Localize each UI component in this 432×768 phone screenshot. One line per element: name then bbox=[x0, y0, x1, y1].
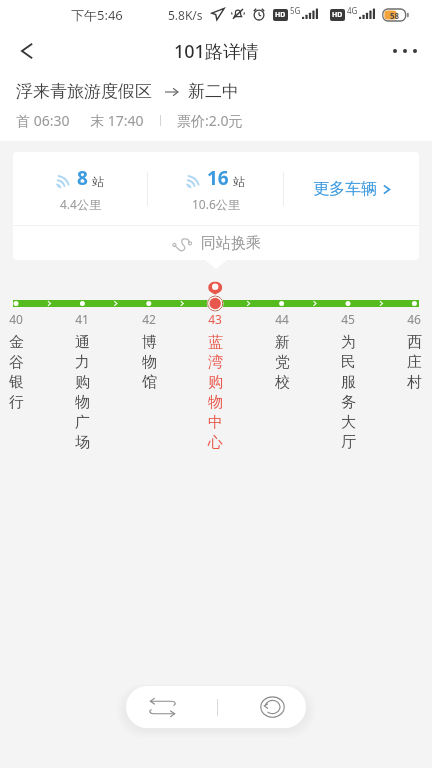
staticText: 4.4公里 bbox=[60, 196, 101, 212]
button[interactable]: 42 bbox=[127, 311, 171, 392]
staticText: 物 bbox=[208, 393, 223, 412]
staticText: 浮来青旅游度假区 bbox=[16, 81, 152, 102]
staticText: 广 bbox=[75, 413, 90, 432]
button[interactable]: 40 bbox=[0, 311, 38, 412]
staticText: 服 bbox=[341, 373, 356, 392]
staticText: 首 06:30 bbox=[16, 111, 70, 129]
button[interactable]: 46 bbox=[392, 311, 432, 392]
staticText: 厅 bbox=[341, 433, 356, 452]
staticText: 46 bbox=[407, 311, 421, 324]
button[interactable]: 更多车辆 bbox=[284, 152, 419, 225]
button[interactable]: 45 bbox=[326, 311, 370, 452]
staticText: 4G bbox=[347, 5, 358, 16]
staticText: 40 bbox=[9, 311, 23, 324]
staticText: 物 bbox=[75, 393, 90, 412]
staticText: 站 bbox=[233, 174, 245, 189]
button[interactable]: 16 bbox=[148, 152, 283, 225]
button[interactable]: 43 bbox=[193, 311, 237, 452]
button[interactable]: 同站换乘 bbox=[13, 226, 419, 260]
button[interactable]: Refresh bbox=[244, 686, 300, 728]
staticText: 购 bbox=[208, 373, 223, 392]
staticText: 41 bbox=[75, 311, 89, 324]
staticText: 行 bbox=[9, 393, 24, 412]
staticText: 101路详情 bbox=[174, 39, 259, 64]
staticText: 大 bbox=[341, 413, 356, 432]
staticText: 心 bbox=[208, 433, 223, 452]
staticText: 更多车辆 bbox=[313, 179, 377, 199]
staticText: 下午5:46 bbox=[71, 6, 123, 24]
staticText: 力 bbox=[75, 353, 90, 372]
staticText: 馆 bbox=[142, 373, 157, 392]
staticText: 银 bbox=[9, 373, 24, 392]
staticText: 新二中 bbox=[188, 81, 239, 102]
staticText: 民 bbox=[341, 353, 356, 372]
staticText: 博 bbox=[142, 333, 157, 352]
staticText: 中 bbox=[208, 413, 223, 432]
staticText: 西 bbox=[407, 333, 422, 352]
staticText: 票价:2.0元 bbox=[177, 111, 243, 129]
staticText: 站 bbox=[92, 174, 104, 189]
staticText: 谷 bbox=[9, 353, 24, 372]
button[interactable]: 41 bbox=[60, 311, 104, 452]
staticText: 10.6公里 bbox=[192, 196, 240, 212]
staticText: 为 bbox=[341, 333, 356, 352]
staticText: 8 bbox=[77, 165, 88, 191]
staticText: 村 bbox=[407, 373, 422, 392]
staticText: 物 bbox=[142, 353, 157, 372]
staticText: 购 bbox=[75, 373, 90, 392]
button[interactable]: Switch direction bbox=[134, 686, 190, 728]
staticText: 同站换乘 bbox=[201, 234, 261, 253]
button[interactable]: Back bbox=[0, 30, 54, 72]
staticText: 蓝 bbox=[208, 333, 223, 352]
button[interactable]: 44 bbox=[260, 311, 304, 392]
staticText: 金 bbox=[9, 333, 24, 352]
staticText: 5.8K/s bbox=[168, 7, 203, 23]
staticText: 新 bbox=[275, 333, 290, 352]
staticText: 庄 bbox=[407, 353, 422, 372]
staticText: 44 bbox=[275, 311, 289, 324]
staticText: 5G bbox=[290, 5, 301, 16]
button[interactable]: More options bbox=[378, 30, 432, 72]
staticText: 16 bbox=[207, 165, 229, 191]
staticText: 末 17:40 bbox=[90, 111, 144, 129]
staticText: HD bbox=[332, 10, 343, 20]
staticText: HD bbox=[275, 10, 286, 20]
staticText: 湾 bbox=[208, 353, 223, 372]
staticText: 43 bbox=[208, 311, 222, 324]
staticText: 场 bbox=[75, 433, 90, 452]
staticText: 务 bbox=[341, 393, 356, 412]
staticText: 党 bbox=[275, 353, 290, 372]
staticText: 42 bbox=[142, 311, 156, 324]
staticText: 58 bbox=[390, 10, 400, 21]
button[interactable]: 8 bbox=[13, 152, 147, 225]
staticText: 校 bbox=[275, 373, 290, 392]
staticText: 通 bbox=[75, 333, 90, 352]
staticText: 45 bbox=[341, 311, 355, 324]
